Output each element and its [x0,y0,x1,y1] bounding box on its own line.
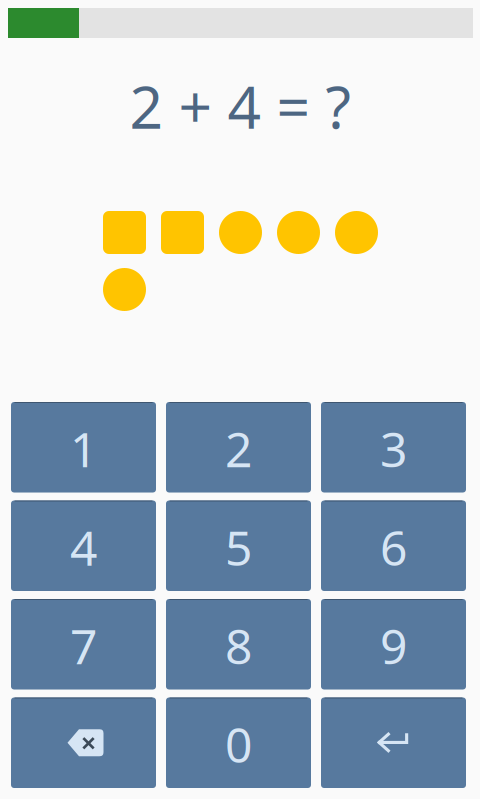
button[interactable]: 1 [11,402,156,492]
staticText: 9 [380,614,407,678]
staticText: 1 [70,417,97,481]
button[interactable]: 6 [321,500,466,591]
staticText: 3 [380,417,407,481]
button[interactable]: 8 [166,599,311,689]
button[interactable]: 3 [321,402,466,492]
button[interactable]: Enter [321,697,466,788]
staticText: 8 [225,614,252,678]
staticText: 4 [70,515,97,579]
button[interactable]: 7 [11,599,156,689]
button[interactable]: 0 [166,697,311,788]
button[interactable]: Delete [11,697,156,788]
staticText: 2 [225,417,252,481]
staticText: 2 + 4 = ? [129,67,350,145]
staticText: 6 [380,515,407,579]
button[interactable]: 5 [166,500,311,591]
button[interactable]: 4 [11,500,156,591]
staticText: 5 [225,515,252,579]
staticText: 0 [225,712,252,776]
button[interactable]: 9 [321,599,466,689]
button[interactable]: 2 [166,402,311,492]
staticText: 7 [70,614,97,678]
